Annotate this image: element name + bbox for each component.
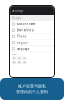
staticText: Language <box>17 47 30 51</box>
staticText: Account name <box>17 22 36 26</box>
button[interactable]: 00 <box>12 61 16 64</box>
button[interactable]: 00 <box>22 57 26 60</box>
button[interactable]: Email address <box>10 27 54 33</box>
staticText: Email address <box>17 28 34 32</box>
button[interactable]: Region <box>10 40 54 46</box>
button[interactable]: Account name <box>10 21 54 27</box>
staticText: 管理你的个人资料 <box>16 89 48 94</box>
button[interactable]: 00 <box>12 57 16 60</box>
button[interactable]: 00 <box>22 61 26 64</box>
button[interactable]: 00 <box>17 61 21 64</box>
staticText: 00 <box>18 57 20 59</box>
staticText: 00 <box>13 61 15 63</box>
staticText: Region <box>17 41 28 44</box>
staticText: Details <box>12 16 21 20</box>
staticText: 00 <box>23 61 25 63</box>
staticText: 00 <box>18 61 20 63</box>
staticText: 00 <box>23 57 25 59</box>
button[interactable]: Phone <box>10 33 54 39</box>
staticText: Settings <box>12 9 23 12</box>
staticText: 账户设置与隐私 <box>18 84 46 88</box>
button[interactable]: 00 <box>17 57 21 60</box>
staticText: Phone <box>17 35 27 38</box>
button[interactable]: Language <box>10 46 54 52</box>
staticText: Options <box>12 54 17 55</box>
staticText: 00 <box>13 57 15 59</box>
